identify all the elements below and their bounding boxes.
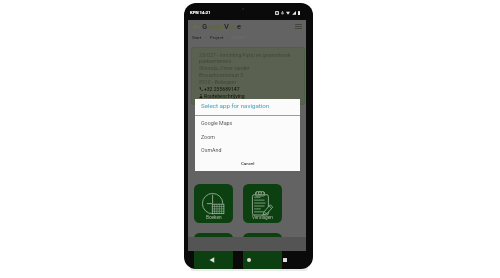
staticText: Google Maps	[201, 120, 233, 126]
staticText: 23/027 - Inrichting Patio en groenstrook	[199, 52, 291, 58]
button[interactable]: OsmAnd	[195, 143, 300, 157]
button[interactable]: Cancel	[195, 156, 300, 171]
staticText: Select app for navigation	[201, 102, 270, 109]
staticText: G	[202, 22, 208, 31]
button[interactable]: Verslagen	[243, 184, 282, 223]
button[interactable]: Home	[241, 252, 257, 268]
staticText: +32 235689147	[204, 86, 240, 92]
button[interactable]: Back	[204, 252, 220, 268]
button[interactable]: +32 235689147	[199, 86, 240, 92]
staticText: Verslagen	[252, 215, 273, 221]
staticText: e	[237, 22, 242, 31]
button[interactable]: Zoom	[195, 130, 300, 144]
button[interactable]: Boeken	[194, 184, 233, 223]
staticText: roen	[208, 22, 224, 31]
button[interactable]: Google Maps	[195, 116, 300, 130]
staticText: 8510 - Bellegem	[199, 79, 237, 85]
staticText: Routebeschrijving	[204, 93, 245, 99]
button[interactable]: Select app for navigation	[195, 99, 300, 111]
staticText: parkeerterrein	[199, 58, 232, 64]
button[interactable]: Routebeschrijving	[199, 93, 245, 99]
staticText: Brouwtorenstraat 5	[199, 72, 244, 78]
staticText: isi	[229, 22, 237, 31]
staticText: Zoom	[201, 134, 215, 140]
staticText: V	[224, 22, 229, 31]
staticText: Project	[210, 35, 224, 40]
button[interactable]: Recent apps	[277, 252, 293, 268]
button[interactable]: 23/027 - Inrichting Patio en groenstrook	[191, 47, 305, 105]
staticText: Boeken	[206, 215, 222, 221]
staticText: KPN 14:21	[190, 10, 211, 15]
staticText: Start	[192, 35, 202, 40]
button[interactable]: Open menu	[293, 21, 304, 32]
button[interactable]: Menu tile	[194, 233, 233, 269]
staticText: Cancel	[241, 161, 255, 166]
button[interactable]: Navigate back	[191, 22, 200, 31]
staticText: Shionda, Omer vander	[199, 65, 250, 71]
button[interactable]: Menu tile	[243, 233, 282, 269]
staticText: OsmAnd	[201, 147, 222, 153]
